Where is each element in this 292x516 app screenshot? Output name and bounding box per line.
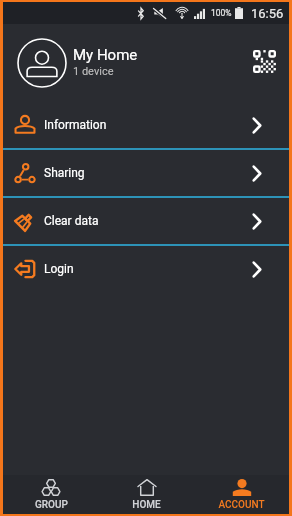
button[interactable]: Sharing [3,150,289,196]
staticText: Information [44,118,107,132]
staticText: HOME [132,499,161,511]
button[interactable]: ACCOUNT [194,475,289,514]
button[interactable]: Login [3,246,289,292]
button[interactable]: GROUP [3,475,99,514]
button[interactable]: Clear data [3,198,289,244]
staticText: Clear data [44,214,99,228]
staticText: 100% [211,8,232,18]
button[interactable]: HOME [99,475,194,514]
staticText: 1 device [73,65,114,78]
staticText: GROUP [35,499,68,511]
staticText: Login [44,262,74,276]
staticText: ACCOUNT [218,499,265,511]
staticText: 16:56 [251,6,284,21]
button[interactable]: Scan QR code [247,46,281,76]
staticText: My Home [73,46,138,64]
button[interactable]: Information [3,102,289,148]
staticText: Sharing [44,166,85,180]
